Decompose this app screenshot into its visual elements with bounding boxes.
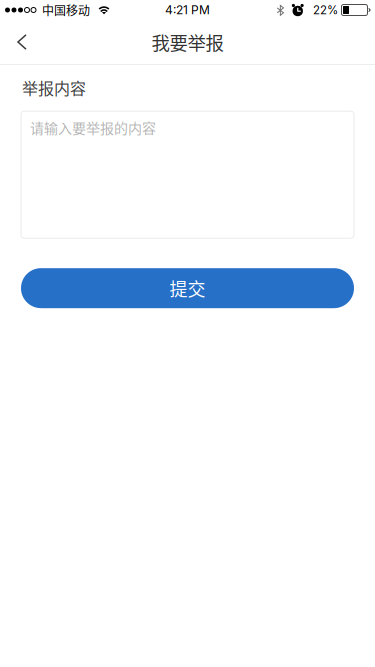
staticText: 我要举报	[151, 29, 223, 55]
staticText: 22%	[313, 3, 338, 17]
button[interactable]: 提交	[21, 268, 354, 308]
staticText: 举报内容	[22, 76, 86, 99]
staticText: 提交	[169, 275, 205, 301]
staticText: 请输入要举报的内容	[30, 117, 156, 137]
button[interactable]: Back	[0, 20, 44, 64]
button[interactable]: 请输入要举报的内容	[21, 111, 354, 238]
staticText: 中国移动	[42, 1, 90, 19]
staticText: 4:21 PM	[165, 3, 210, 17]
